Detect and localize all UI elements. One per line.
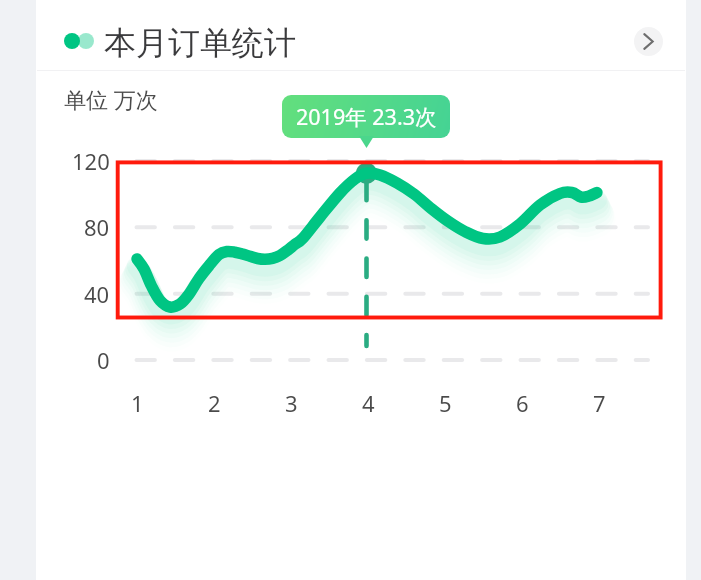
staticText: 2019年 23.3次 — [296, 102, 437, 131]
staticText: 本月订单统计 — [104, 23, 296, 63]
staticText: 2 — [208, 388, 221, 418]
staticText: 40 — [84, 279, 110, 309]
button[interactable]: 2019年 23.3次 — [282, 95, 450, 138]
staticText: 0 — [97, 345, 110, 375]
staticText: 80 — [84, 212, 110, 242]
staticText: 7 — [593, 388, 606, 418]
button[interactable]: Details — [634, 27, 663, 56]
staticText: 120 — [72, 146, 110, 176]
staticText: 3 — [285, 388, 298, 418]
staticText: 1 — [131, 388, 144, 418]
staticText: 6 — [516, 388, 529, 418]
button[interactable]: 本月订单统计 — [36, 0, 686, 70]
staticText: 单位 万次 — [64, 84, 158, 114]
staticText: 5 — [439, 388, 452, 418]
staticText: 4 — [362, 388, 375, 418]
